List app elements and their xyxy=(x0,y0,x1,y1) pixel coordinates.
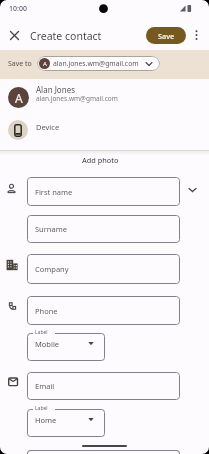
staticText: Company xyxy=(35,264,69,274)
button[interactable]: Email xyxy=(27,372,180,400)
staticText: Save to xyxy=(8,59,32,69)
staticText: A xyxy=(43,60,47,68)
button[interactable]: Surname xyxy=(27,215,180,243)
staticText: Label xyxy=(35,329,48,336)
button[interactable]: A xyxy=(37,56,160,71)
staticText: Label xyxy=(35,405,48,412)
staticText: Email xyxy=(35,381,55,391)
button[interactable] xyxy=(190,28,203,41)
button[interactable]: Phone xyxy=(27,296,180,325)
button[interactable]: Device xyxy=(0,117,209,145)
staticText: Alan Jones xyxy=(36,84,75,95)
button[interactable]: Add photo xyxy=(74,153,126,167)
button[interactable]: A xyxy=(0,83,209,113)
staticText: Surname xyxy=(35,224,67,234)
button[interactable]: Mobile xyxy=(27,333,105,361)
staticText: Phone xyxy=(35,306,58,316)
button[interactable]: First name xyxy=(27,177,180,206)
staticText: Save xyxy=(158,31,175,41)
staticText: Home xyxy=(35,415,57,425)
staticText: Device xyxy=(36,122,60,132)
button[interactable] xyxy=(7,28,22,43)
staticText: 10:00 xyxy=(9,4,27,14)
staticText: A xyxy=(15,90,23,106)
button[interactable] xyxy=(186,183,199,196)
button[interactable]: Save xyxy=(146,27,186,44)
staticText: Mobile xyxy=(35,339,60,349)
staticText: Create contact xyxy=(30,29,102,43)
staticText: alan.jones.wm@gmail.com xyxy=(36,94,118,103)
staticText: First name xyxy=(35,187,73,197)
staticText: alan.jones.wm@gmail.com xyxy=(53,59,139,68)
button[interactable]: Home xyxy=(27,409,105,437)
staticText: Add photo xyxy=(82,155,119,165)
button[interactable]: Company xyxy=(27,254,180,284)
